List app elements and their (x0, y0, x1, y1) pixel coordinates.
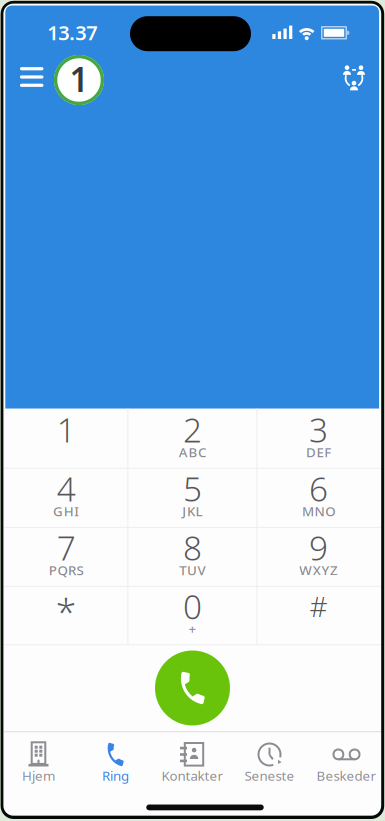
staticText: PQRS (49, 561, 84, 579)
button[interactable]: Delte kontakter (337, 62, 371, 94)
button[interactable]: 7 (5, 527, 128, 586)
staticText: Kontakter (161, 767, 223, 784)
staticText: 0 (183, 584, 202, 628)
button[interactable]: Ring op (155, 650, 230, 725)
button[interactable]: Kontakter (154, 731, 231, 816)
button[interactable]: 1 (5, 409, 128, 468)
staticText: # (310, 588, 328, 625)
button[interactable]: # (257, 586, 380, 644)
button[interactable]: Hjem (0, 731, 77, 816)
staticText: 4 (57, 466, 76, 511)
staticText: Ring (102, 767, 129, 784)
staticText: 7 (57, 525, 76, 570)
button[interactable]: 1 (54, 55, 104, 105)
staticText: 5 (183, 466, 202, 511)
button[interactable]: 3 (257, 409, 380, 468)
staticText: TUV (179, 561, 205, 579)
staticText: MNO (302, 502, 335, 520)
button[interactable]: 2 (128, 409, 257, 468)
staticText: 8 (183, 525, 202, 570)
staticText: 2 (183, 407, 202, 452)
staticText: Hjem (22, 767, 55, 784)
button[interactable]: 9 (257, 527, 380, 586)
staticText: 6 (309, 466, 328, 511)
staticText: 13.37 (47, 19, 97, 46)
staticText: Seneste (244, 767, 294, 784)
button[interactable]: 6 (257, 468, 380, 527)
staticText: 3 (309, 407, 328, 452)
button[interactable]: Beskeder (308, 731, 385, 816)
staticText: GHI (53, 502, 79, 520)
staticText: WXYZ (299, 561, 338, 579)
button[interactable]: * (5, 586, 128, 644)
staticText: 1 (69, 57, 88, 101)
button[interactable]: Ring (77, 731, 154, 816)
button[interactable]: 8 (128, 527, 257, 586)
button[interactable]: Seneste (231, 731, 308, 816)
staticText: DEF (306, 443, 331, 461)
button[interactable]: 0 (128, 586, 257, 644)
staticText: + (188, 620, 196, 637)
staticText: 1 (57, 407, 76, 452)
staticText: Beskeder (316, 767, 376, 784)
staticText: ABC (179, 443, 206, 461)
staticText: * (56, 586, 77, 636)
button[interactable]: Menu (14, 60, 50, 94)
staticText: 9 (309, 525, 328, 570)
button[interactable]: 4 (5, 468, 128, 527)
staticText: JKL (182, 502, 202, 520)
button[interactable]: 5 (128, 468, 257, 527)
